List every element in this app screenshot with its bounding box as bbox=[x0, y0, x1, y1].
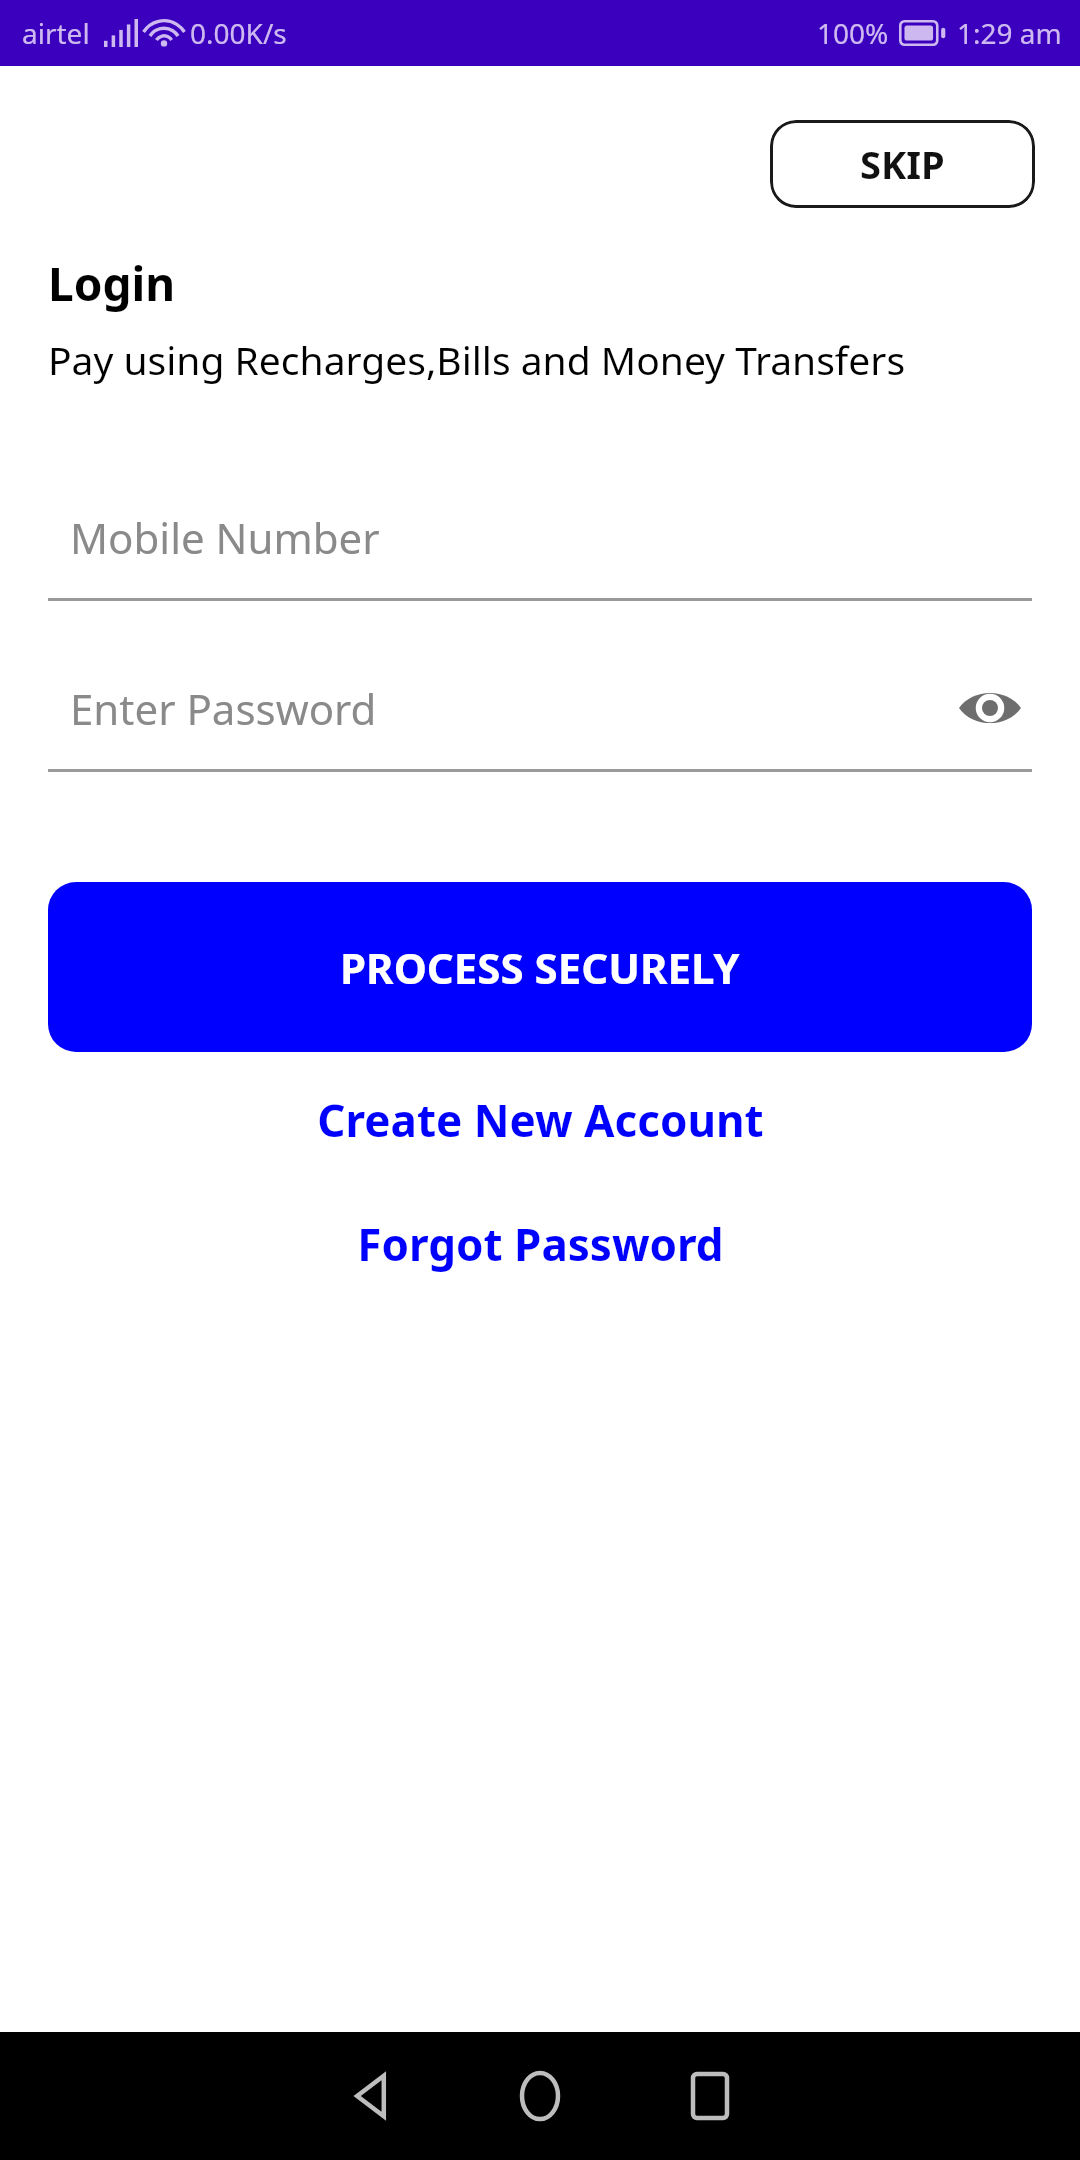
staticText: Enter Password bbox=[70, 680, 377, 737]
button[interactable]: Create New Account bbox=[0, 1078, 1080, 1162]
staticText: Mobile Number bbox=[70, 509, 380, 566]
staticText: 100% bbox=[817, 14, 889, 52]
staticText: 1:29 am bbox=[957, 14, 1062, 52]
button[interactable]: Back bbox=[285, 2032, 455, 2160]
staticText: PROCESS SECURELY bbox=[340, 939, 740, 996]
staticText: Create New Account bbox=[317, 1090, 764, 1150]
staticText: Login bbox=[48, 252, 176, 315]
button[interactable]: SKIP bbox=[770, 120, 1035, 208]
button[interactable]: Forgot Password bbox=[0, 1202, 1080, 1286]
button[interactable]: PROCESS SECURELY bbox=[48, 882, 1032, 1052]
staticText: airtel bbox=[22, 14, 90, 52]
staticText: Pay using Recharges,Bills and Money Tran… bbox=[48, 333, 906, 386]
staticText: Forgot Password bbox=[357, 1214, 724, 1274]
button[interactable]: Mobile Number bbox=[48, 482, 1032, 592]
staticText: SKIP bbox=[860, 138, 945, 190]
button[interactable]: Show password bbox=[954, 672, 1026, 744]
button[interactable]: Home bbox=[455, 2032, 625, 2160]
button[interactable]: Recent apps bbox=[625, 2032, 795, 2160]
staticText: 0.00K/s bbox=[190, 14, 287, 52]
button[interactable]: Enter Password bbox=[48, 653, 1032, 763]
